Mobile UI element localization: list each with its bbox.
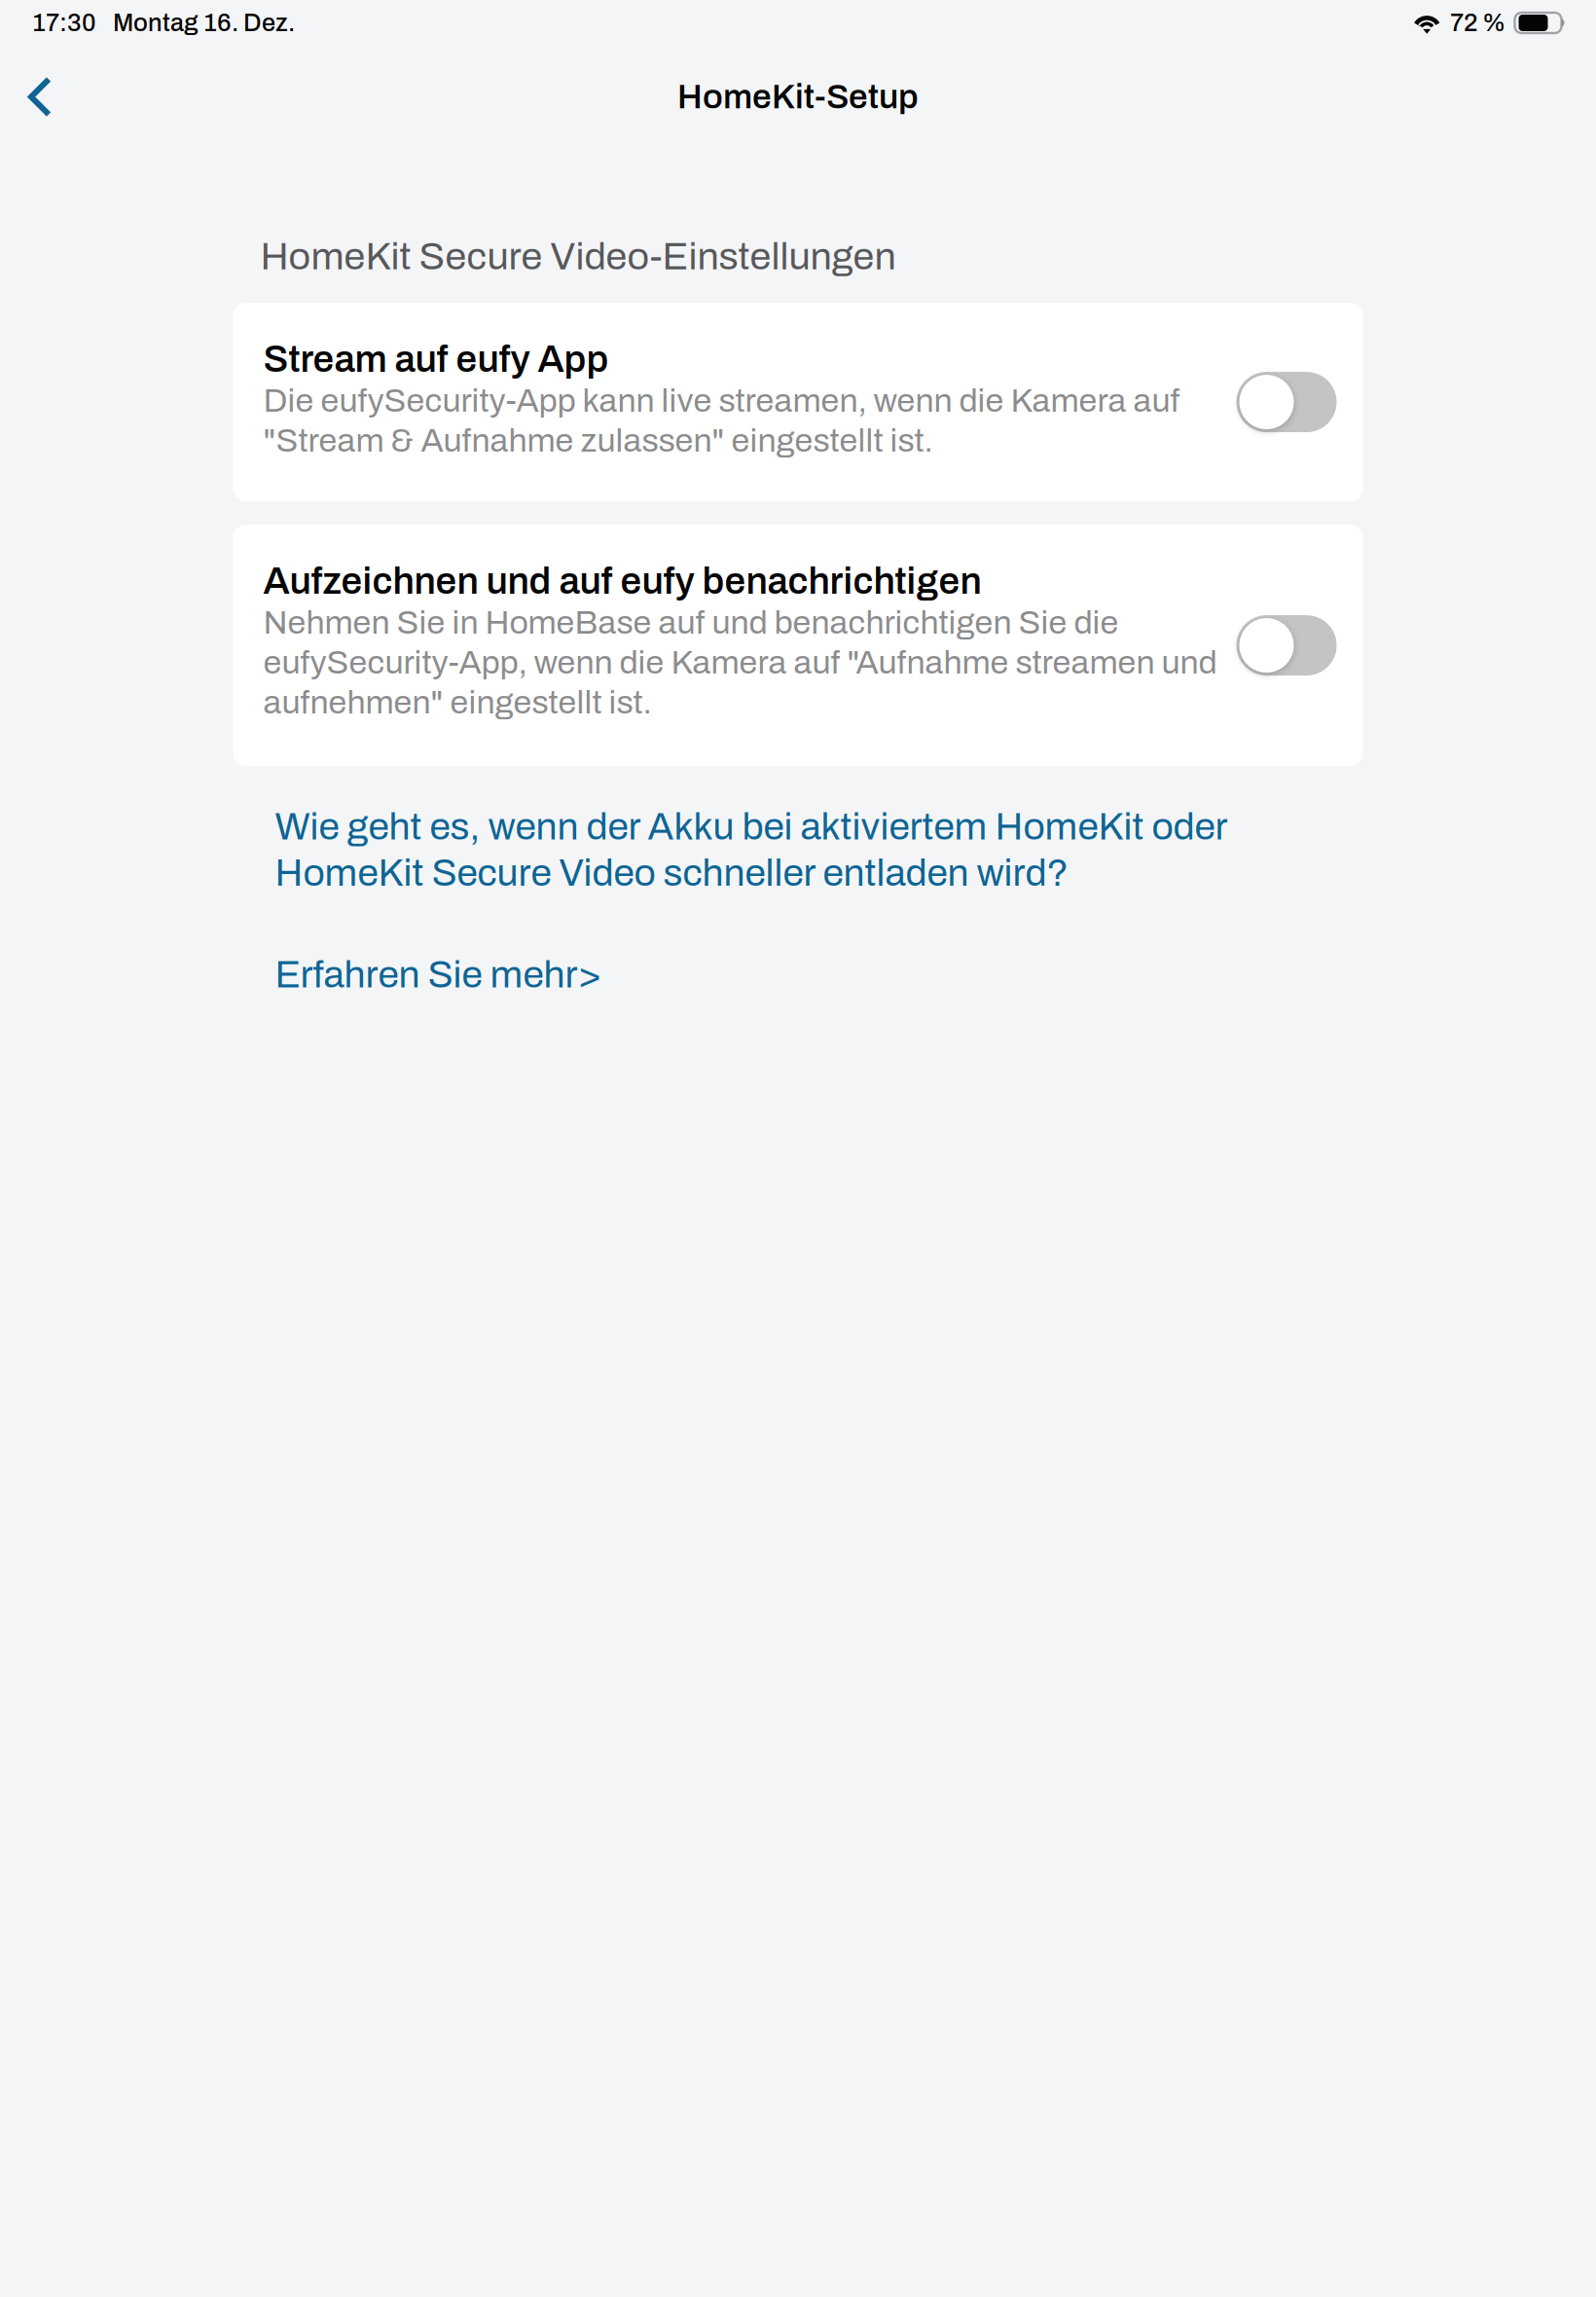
button[interactable]: Back [0, 48, 76, 146]
staticText: Wie geht es, wenn der Akku bei aktiviert… [275, 806, 1227, 894]
staticText: Erfahren Sie mehr> [275, 954, 601, 995]
button[interactable]: Aufzeichnen und auf eufy benachrichtigen [233, 525, 1363, 766]
staticText: HomeKit Secure Video-Einstellungen [260, 236, 896, 277]
staticText: Nehmen Sie in HomeBase auf und benachric… [263, 605, 1217, 720]
staticText: HomeKit-Setup [677, 78, 919, 115]
button[interactable]: Wie geht es, wenn der Akku bei aktiviert… [275, 806, 1258, 894]
staticText: Montag 16. Dez. [113, 9, 295, 36]
staticText: Stream auf eufy App [263, 339, 609, 380]
staticText: Die eufySecurity-App kann live streamen,… [263, 383, 1180, 459]
staticText: 17:30 [32, 9, 96, 36]
button[interactable]: Stream auf eufy App [233, 303, 1363, 501]
staticText: Aufzeichnen und auf eufy benachrichtigen [263, 561, 981, 602]
staticText: 72 % [1450, 9, 1505, 36]
button[interactable]: Erfahren Sie mehr> [275, 954, 601, 995]
